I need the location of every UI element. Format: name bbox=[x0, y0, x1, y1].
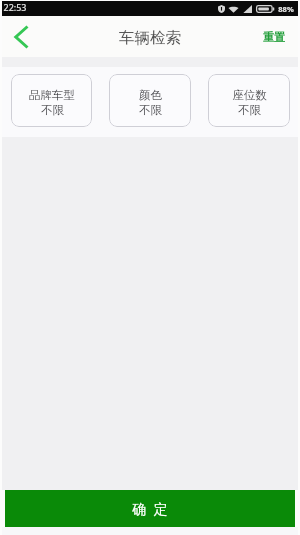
staticText: 确 定 bbox=[132, 499, 168, 518]
staticText: 颜色 bbox=[139, 88, 162, 102]
staticText: 88% bbox=[278, 4, 294, 14]
staticText: 座位数 bbox=[232, 88, 267, 102]
button[interactable]: 座位数 bbox=[208, 74, 290, 127]
button[interactable]: 重置 bbox=[253, 16, 298, 57]
button[interactable]: 品牌车型 bbox=[11, 74, 92, 127]
staticText: 重置 bbox=[263, 30, 285, 44]
button[interactable]: 颜色 bbox=[109, 74, 191, 127]
staticText: 品牌车型 bbox=[29, 88, 75, 102]
button[interactable]: 确 定 bbox=[5, 490, 295, 527]
staticText: 不限 bbox=[139, 103, 162, 117]
staticText: 不限 bbox=[41, 103, 64, 117]
staticText: 不限 bbox=[238, 103, 261, 117]
staticText: 22:53 bbox=[3, 1, 27, 13]
staticText: 车辆检索 bbox=[119, 28, 181, 48]
button[interactable]: Back bbox=[2, 16, 40, 57]
